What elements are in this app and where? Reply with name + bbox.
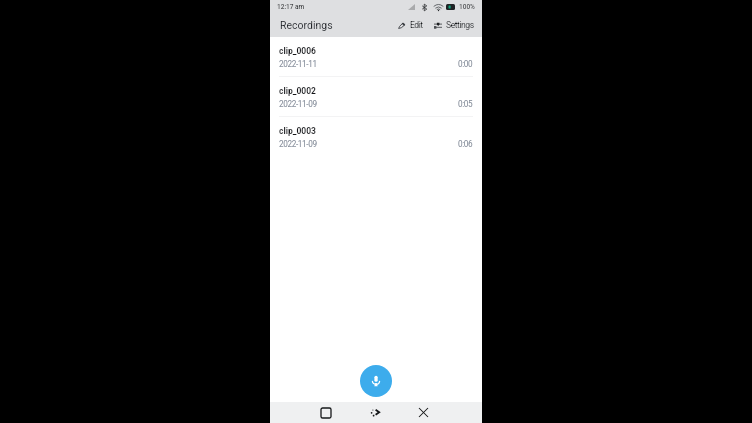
staticText: 100%	[459, 3, 475, 11]
button[interactable]: Close	[399, 402, 448, 423]
button[interactable]: Settings	[431, 16, 477, 34]
staticText: clip_0002	[279, 86, 316, 96]
staticText: 0:00	[458, 59, 473, 69]
button[interactable]: clip_0002	[270, 77, 482, 117]
staticText: 2022-11-11	[279, 59, 317, 69]
button[interactable]: Record	[360, 365, 392, 397]
staticText: 12:17 am	[277, 3, 305, 11]
button[interactable]: clip_0006	[270, 37, 482, 77]
staticText: 2022-11-09	[279, 139, 317, 149]
staticText: 2022-11-09	[279, 99, 317, 109]
button[interactable]: Overview	[301, 402, 350, 423]
staticText: Settings	[446, 20, 474, 30]
button[interactable]: Home	[350, 402, 399, 423]
staticText: clip_0003	[279, 126, 316, 136]
button[interactable]: Edit	[395, 16, 426, 34]
staticText: clip_0006	[279, 46, 316, 56]
staticText: Edit	[410, 20, 423, 30]
button[interactable]: clip_0003	[270, 117, 482, 157]
staticText: 0:06	[458, 139, 473, 149]
staticText: 0:05	[458, 99, 473, 109]
staticText: Recordings	[280, 19, 333, 31]
